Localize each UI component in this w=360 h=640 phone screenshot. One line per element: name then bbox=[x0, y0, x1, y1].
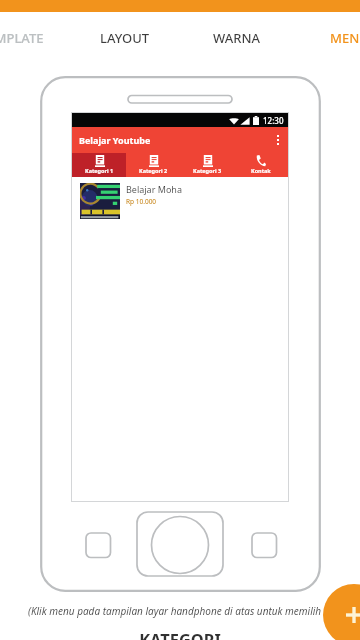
staticText: (Klik menu pada tampilan layar handphone… bbox=[28, 604, 322, 618]
button[interactable]: TEMPLATE bbox=[0, 21, 68, 54]
staticText: 12:30 bbox=[263, 115, 284, 126]
staticText: Kontak bbox=[251, 167, 271, 174]
button[interactable]: Belajar Moha bbox=[72, 177, 288, 221]
staticText: Kategori 3 bbox=[193, 167, 222, 174]
button[interactable]: WARNA bbox=[181, 21, 293, 54]
staticText: Rp 10.000 bbox=[126, 197, 157, 206]
button[interactable]: Kategori 3 bbox=[180, 153, 234, 177]
staticText: TEMPLATE bbox=[0, 29, 44, 47]
staticText: LAYOUT bbox=[100, 29, 150, 47]
button[interactable]: More options bbox=[268, 127, 288, 153]
button[interactable]: MENU bbox=[293, 21, 360, 54]
staticText: MENU bbox=[330, 29, 360, 47]
staticText: Belajar Moha bbox=[126, 183, 182, 195]
staticText: Belajar Youtube bbox=[79, 134, 151, 146]
staticText: WARNA bbox=[213, 29, 261, 47]
button[interactable]: Kategori 2 bbox=[126, 153, 180, 177]
button[interactable]: Kontak bbox=[234, 153, 288, 177]
button[interactable]: Add bbox=[323, 584, 360, 640]
staticText: Kategori 1 bbox=[85, 167, 114, 174]
staticText: Kategori 2 bbox=[139, 167, 168, 174]
staticText: KATEGORI bbox=[0, 628, 360, 640]
button[interactable]: LAYOUT bbox=[69, 21, 181, 54]
button[interactable]: Kategori 1 bbox=[72, 153, 126, 177]
